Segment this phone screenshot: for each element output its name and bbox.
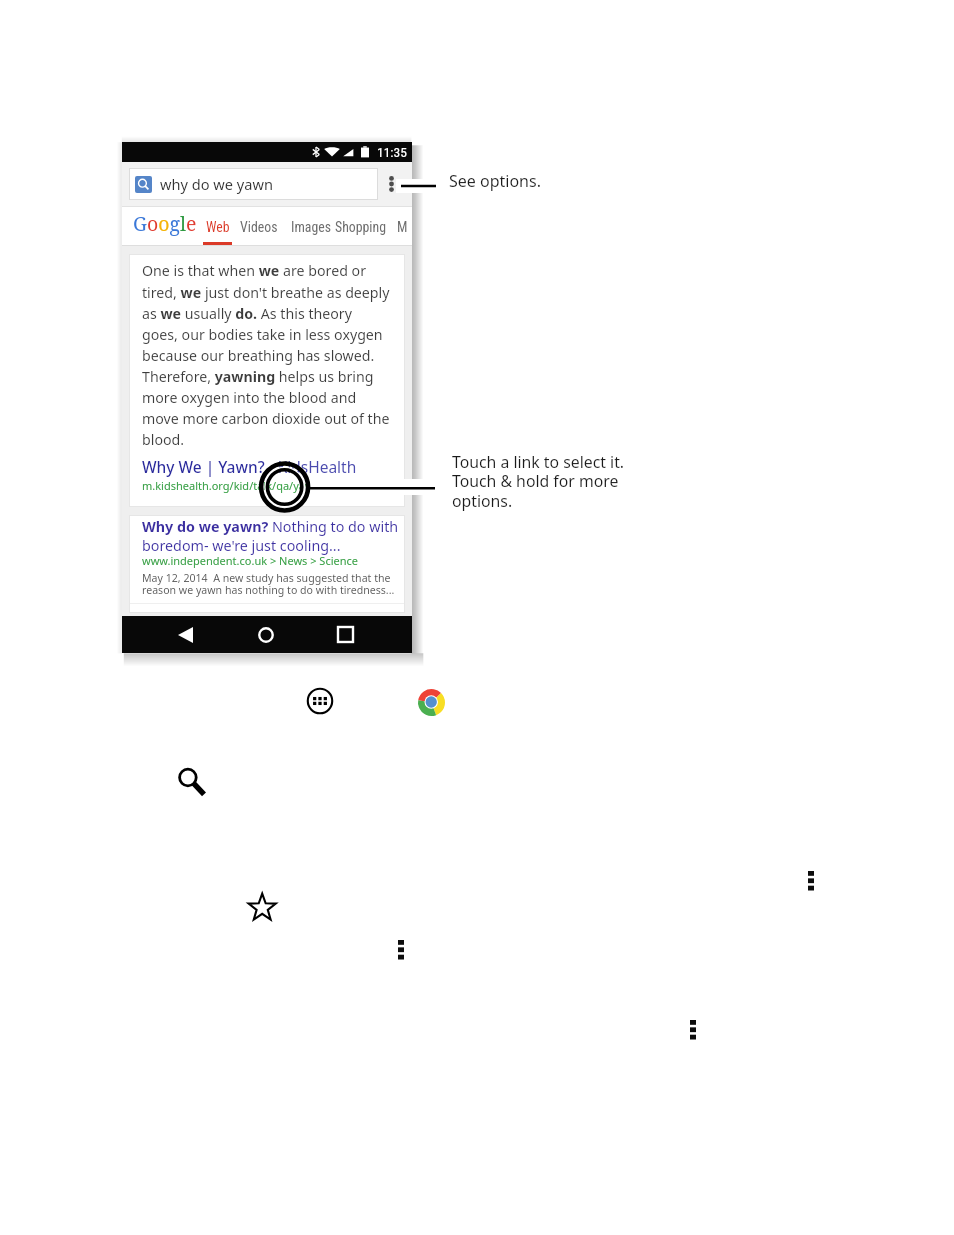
staticText: Touch a link to select it. Touch & hold … [452,451,625,512]
staticText: why do we yawn [160,174,273,194]
staticText: Images [291,219,332,235]
button[interactable]: Videos [238,206,280,245]
button[interactable]: See options [378,168,409,200]
staticText: Google [133,210,197,237]
button[interactable]: Web [203,206,232,245]
button[interactable]: Favorite [248,893,277,922]
button[interactable]: M [394,206,410,245]
button[interactable]: More options [808,871,814,890]
staticText: Why do we yawn? Nothing to do with bored… [142,517,399,555]
staticText: One is that when we are bored or tired, … [142,261,394,449]
button[interactable]: Why do we yawn? Nothing to do with bored… [129,515,405,613]
button[interactable]: Shopping [333,206,388,245]
staticText: M [397,219,408,235]
staticText: Why We | Yawn? - KidsHealth [142,456,357,477]
staticText: m.kidshealth.org/kid/talk/qa/yawn.html [142,478,348,493]
button[interactable]: Apps [307,688,333,714]
staticText: www.independent.co.uk > News > Science [142,553,358,568]
button[interactable]: Back [171,622,199,647]
button[interactable]: One is that when we are bored or tired, … [129,254,405,507]
staticText: Web [206,219,230,235]
button[interactable]: Chrome [418,689,445,716]
staticText: May 12, 2014 A new study has suggested t… [142,571,395,598]
button[interactable]: Home [252,622,280,647]
staticText: 11:35 [377,144,407,160]
button[interactable]: More options [398,940,404,959]
button[interactable]: why do we yawn [129,168,378,200]
staticText: See options. [449,170,541,192]
button[interactable]: Recents [331,622,359,647]
staticText: Videos [240,219,278,235]
staticText: Shopping [335,219,387,235]
button[interactable]: More options [690,1020,696,1039]
button[interactable]: Search [174,764,208,798]
button[interactable]: Images [289,206,333,245]
